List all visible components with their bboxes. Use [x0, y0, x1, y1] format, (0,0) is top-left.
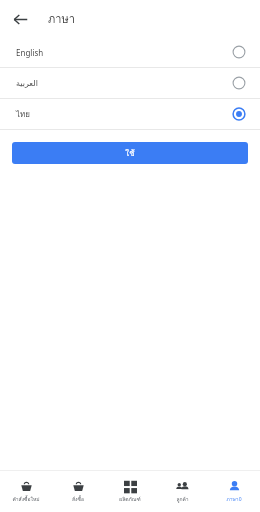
staticText: ผลิตภัณฑ์: [119, 495, 141, 503]
staticText: ภาษา0: [226, 495, 242, 503]
staticText: สั่งซื้อ: [72, 495, 84, 503]
staticText: ภาษา: [48, 10, 75, 27]
staticText: คำสั่งซื้อใหม่: [12, 495, 40, 503]
button[interactable]: العربية: [0, 68, 260, 98]
button[interactable]: สั่งซื้อ: [52, 477, 104, 506]
button[interactable]: Back: [6, 5, 34, 33]
button[interactable]: ใช้: [12, 142, 248, 164]
staticText: العربية: [16, 79, 232, 88]
staticText: ลูกค้า: [176, 495, 189, 503]
button[interactable]: ภาษา0: [208, 477, 260, 506]
button[interactable]: ลูกค้า: [156, 477, 208, 506]
button[interactable]: English: [0, 37, 260, 67]
staticText: ใช้: [125, 147, 135, 160]
button[interactable]: ผลิตภัณฑ์: [104, 477, 156, 506]
button[interactable]: คำสั่งซื้อใหม่: [0, 477, 52, 506]
staticText: English: [16, 47, 232, 58]
staticText: ไทย: [16, 108, 232, 121]
button[interactable]: ไทย: [0, 99, 260, 129]
